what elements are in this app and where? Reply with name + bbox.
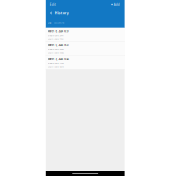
button[interactable]: March 8, 2024 10:37 xyxy=(46,28,125,42)
staticText: COMPUTE xyxy=(54,21,64,24)
button[interactable]: March 3, 2024 15:42 xyxy=(46,56,125,70)
staticText: Add xyxy=(114,2,120,6)
staticText: Single-Core 1749 xyxy=(48,62,64,65)
button[interactable]: Add xyxy=(109,2,125,7)
staticText: March 5, 2024 19:21 xyxy=(48,43,69,47)
button[interactable]: Back xyxy=(46,10,53,16)
staticText: Multi-Core 7298 xyxy=(48,51,64,54)
button[interactable]: Edit xyxy=(46,2,58,7)
button[interactable]: LAB xyxy=(46,21,54,25)
staticText: March 8, 2024 10:37 xyxy=(48,29,69,33)
staticText: Multi-Core 7751 xyxy=(48,37,64,40)
button[interactable]: March 5, 2024 19:21 xyxy=(46,42,125,56)
staticText: History xyxy=(55,11,69,15)
staticText: March 3, 2024 15:42 xyxy=(48,57,69,61)
staticText: LAB xyxy=(48,21,52,24)
staticText: Multi-Core 4819 xyxy=(48,65,64,68)
staticText: Edit xyxy=(50,2,56,6)
button[interactable]: COMPUTE xyxy=(54,21,66,25)
staticText: Single-Core 2941 xyxy=(48,34,64,37)
staticText: Single-Core 2930 xyxy=(48,48,64,51)
